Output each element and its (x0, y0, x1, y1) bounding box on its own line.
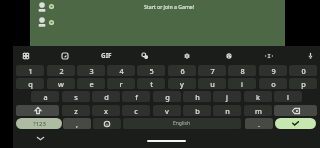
button[interactable]: Emoji (93, 118, 121, 129)
button[interactable]: s (62, 91, 90, 102)
button[interactable]: 6 (168, 65, 196, 76)
staticText: d (104, 92, 109, 102)
button[interactable]: w (47, 78, 75, 89)
staticText: s (74, 92, 78, 102)
staticText: 3 (89, 66, 94, 76)
button[interactable]: Player (36, 16, 48, 30)
staticText: English (173, 120, 191, 127)
staticText: GIF (101, 51, 112, 60)
staticText: m (255, 106, 262, 116)
button[interactable]: 4 (107, 65, 135, 76)
button[interactable]: t (137, 78, 165, 89)
button[interactable]: Backspace (274, 105, 317, 116)
staticText: y (180, 79, 184, 89)
button[interactable]: Theme (210, 46, 248, 65)
button[interactable]: 1 (16, 65, 44, 76)
button[interactable]: c (122, 105, 150, 116)
staticText: 1 (28, 66, 33, 76)
button[interactable]: English (123, 118, 241, 129)
button[interactable]: g (153, 91, 181, 102)
staticText: h (195, 92, 200, 102)
staticText: 9 (271, 66, 276, 76)
staticText: 4 (119, 66, 124, 76)
button[interactable]: Voice input (291, 46, 320, 65)
button[interactable]: b (183, 105, 211, 116)
button[interactable]: Hide keyboard (36, 136, 45, 141)
staticText: 5 (149, 66, 154, 76)
button[interactable]: i (228, 78, 256, 89)
button[interactable]: Stickers (126, 46, 164, 65)
staticText: k (256, 92, 260, 102)
button[interactable]: 7 (198, 65, 226, 76)
staticText: w (58, 79, 64, 89)
button[interactable]: Player (36, 1, 48, 15)
button[interactable]: Text editing (250, 46, 288, 65)
button[interactable]: GIF (87, 46, 125, 65)
button[interactable]: 0 (289, 65, 317, 76)
button[interactable]: r (107, 78, 135, 89)
button[interactable]: e (77, 78, 105, 89)
button[interactable]: 3 (77, 65, 105, 76)
button[interactable]: n (213, 105, 241, 116)
button[interactable]: Clipboard (46, 46, 84, 65)
button[interactable]: m (244, 105, 272, 116)
staticText: x (104, 106, 108, 116)
staticText: v (165, 106, 169, 116)
button[interactable]: Settings (168, 46, 206, 65)
button[interactable]: x (92, 105, 120, 116)
staticText: . (258, 119, 260, 129)
button[interactable]: y (168, 78, 196, 89)
button[interactable]: f (122, 91, 150, 102)
button[interactable]: d (92, 91, 120, 102)
staticText: q (28, 79, 33, 89)
button[interactable]: Player status (49, 20, 54, 25)
staticText: b (195, 106, 200, 116)
staticText: e (89, 79, 94, 89)
button[interactable]: v (153, 105, 181, 116)
button[interactable]: Gboard (7, 46, 45, 65)
button[interactable]: p (289, 78, 317, 89)
staticText: z (74, 106, 78, 116)
staticText: t (150, 79, 153, 89)
button[interactable]: q (16, 78, 44, 89)
button[interactable]: 2 (47, 65, 75, 76)
button[interactable]: Enter (275, 118, 316, 129)
button[interactable]: Shift (16, 105, 59, 116)
staticText: 0 (301, 66, 306, 76)
staticText: l (287, 92, 289, 102)
staticText: 6 (180, 66, 185, 76)
button[interactable]: ?123 (16, 118, 62, 129)
staticText: u (210, 79, 215, 89)
button[interactable]: 5 (137, 65, 165, 76)
staticText: i (241, 79, 243, 89)
button[interactable]: o (259, 78, 287, 89)
staticText: r (119, 79, 123, 89)
staticText: a (43, 92, 48, 102)
button[interactable]: , (63, 118, 91, 129)
staticText: p (301, 79, 306, 89)
staticText: g (165, 92, 170, 102)
staticText: j (226, 92, 228, 102)
staticText: 2 (59, 66, 64, 76)
button[interactable]: z (62, 105, 90, 116)
staticText: 8 (240, 66, 245, 76)
button[interactable]: . (245, 118, 273, 129)
button[interactable]: h (183, 91, 211, 102)
staticText: f (135, 92, 138, 102)
button[interactable]: 8 (228, 65, 256, 76)
staticText: n (225, 106, 230, 116)
staticText: o (271, 79, 276, 89)
button[interactable]: 9 (259, 65, 287, 76)
button[interactable]: a (31, 91, 59, 102)
staticText: Start or join a Game! (144, 3, 195, 10)
button[interactable]: l (274, 91, 302, 102)
staticText: c (134, 106, 138, 116)
staticText: ?123 (33, 120, 46, 128)
staticText: 7 (210, 66, 215, 76)
staticText: , (76, 119, 78, 129)
button[interactable]: k (244, 91, 272, 102)
button[interactable]: j (213, 91, 241, 102)
button[interactable]: Player status (49, 4, 54, 9)
button[interactable]: u (198, 78, 226, 89)
